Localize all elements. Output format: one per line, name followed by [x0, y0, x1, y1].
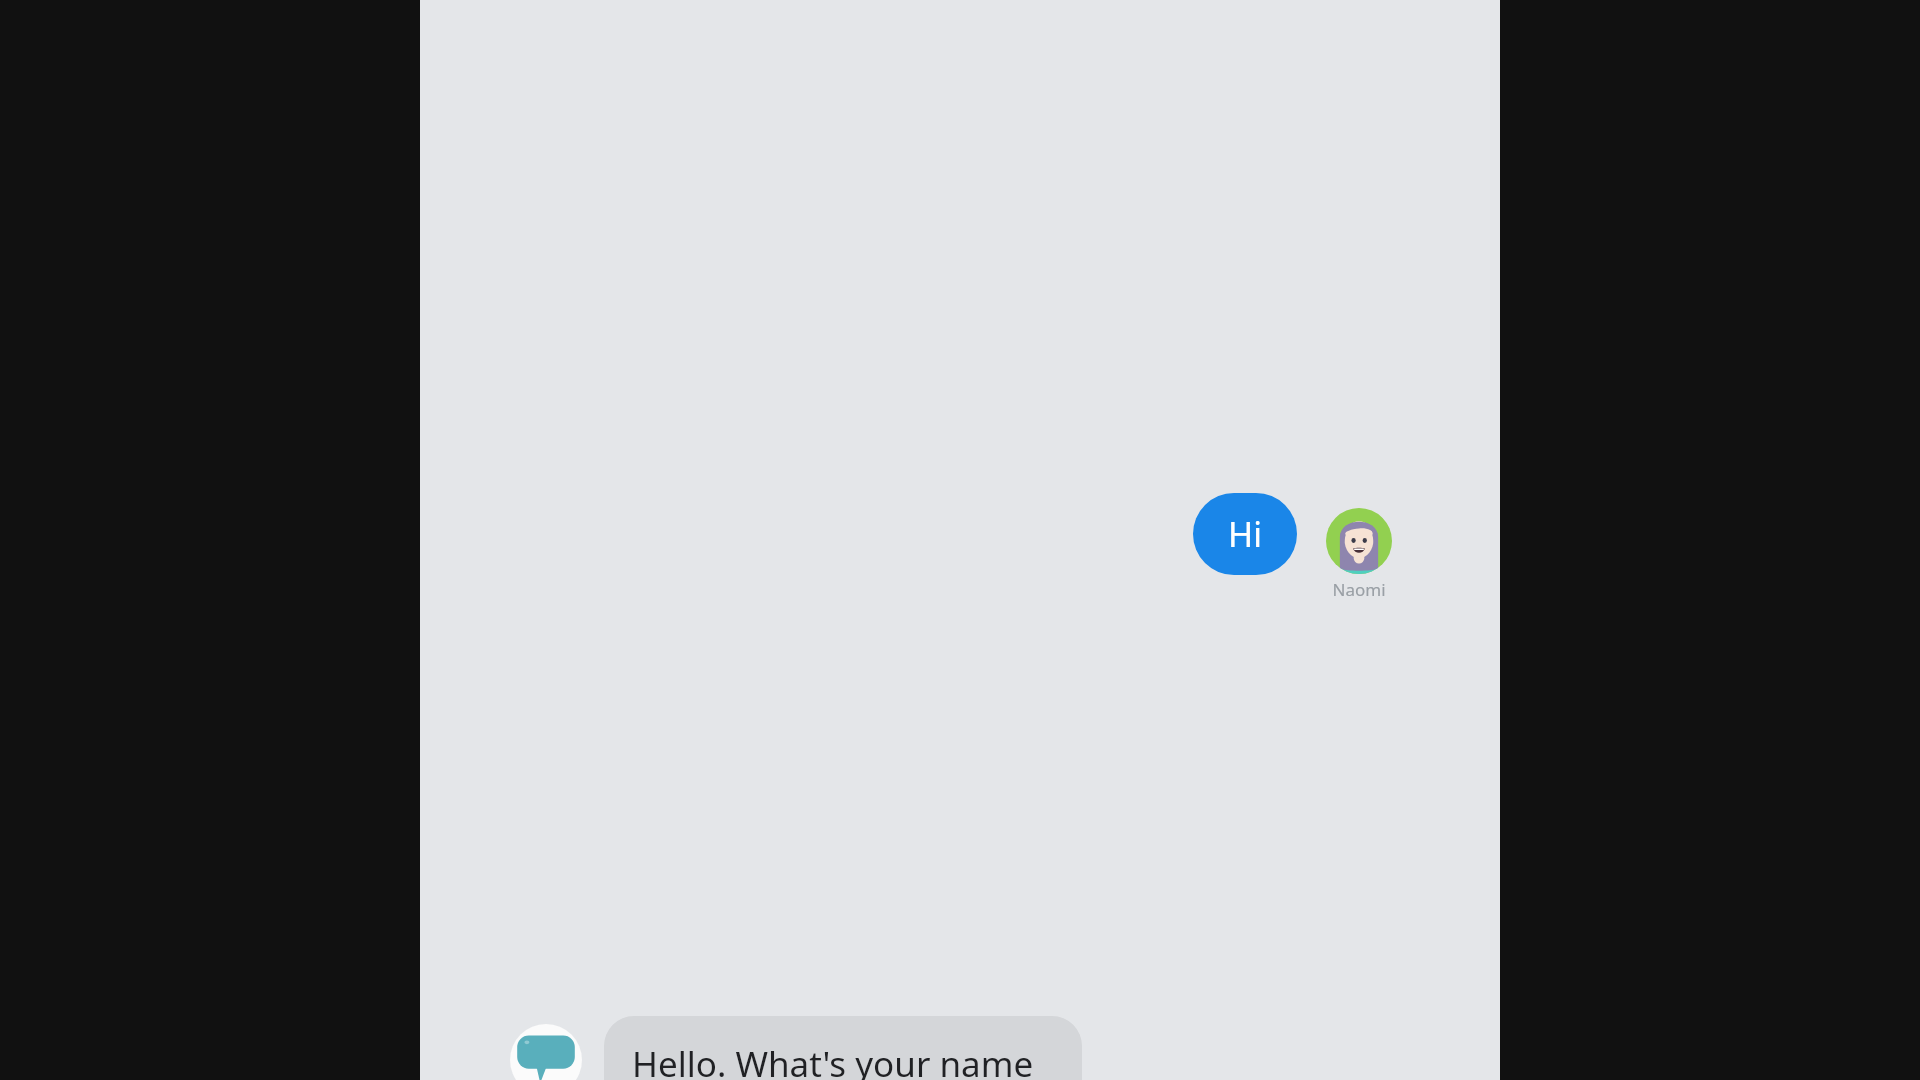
- staticText: Hi: [1228, 511, 1262, 557]
- button[interactable]: Naomi profile: [1326, 480, 1392, 601]
- other: Assistant avatar: [510, 1024, 582, 1080]
- button[interactable]: Hi: [1193, 493, 1297, 575]
- staticText: Hello. What's your name: [632, 1040, 1034, 1080]
- button[interactable]: Hello. What's your name: [604, 1016, 1082, 1080]
- staticText: Naomi: [1332, 578, 1386, 601]
